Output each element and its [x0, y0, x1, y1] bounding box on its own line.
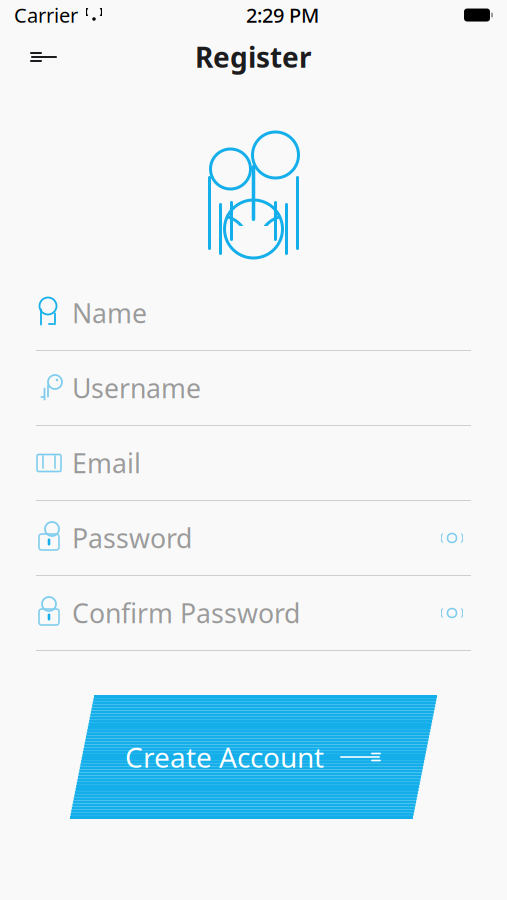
button[interactable]: Show Password [433, 520, 471, 556]
staticText: Confirm Password [72, 595, 300, 631]
button[interactable]: Back [18, 40, 70, 74]
staticText: Register [195, 38, 312, 76]
staticText: Email [72, 445, 141, 481]
staticText: Carrier [14, 2, 78, 28]
staticText: Password [72, 520, 192, 556]
button[interactable]: Show Confirm Password [433, 595, 471, 631]
staticText: 2:29 PM [246, 2, 319, 28]
button[interactable]: Create Account [70, 707, 437, 807]
staticText: Name [72, 295, 147, 331]
staticText: Username [72, 370, 201, 406]
staticText: Create Account [125, 738, 324, 776]
